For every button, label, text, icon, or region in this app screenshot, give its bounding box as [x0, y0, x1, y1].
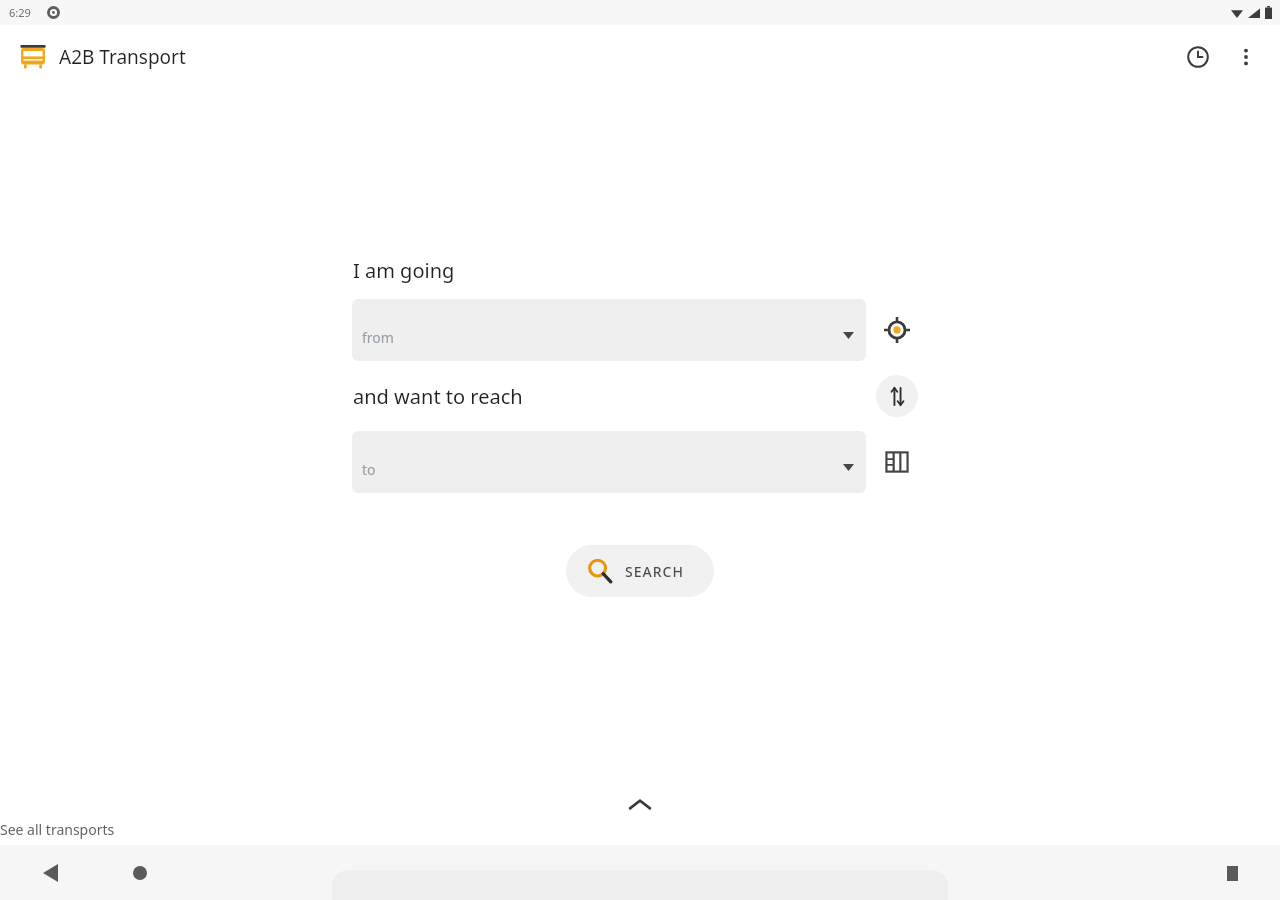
staticText: 6:29	[9, 5, 31, 20]
staticText: See all transports	[0, 820, 1280, 839]
button[interactable]: Choose on map	[866, 431, 928, 493]
staticText: SEARCH	[625, 562, 684, 581]
button[interactable]: Use my location	[866, 299, 928, 361]
staticText: and want to reach	[353, 383, 523, 410]
button[interactable]: Swap from and to	[876, 375, 918, 417]
button[interactable]: See all transports	[0, 799, 1280, 845]
button[interactable]: from	[352, 299, 866, 361]
button[interactable]: History	[1174, 33, 1222, 81]
staticText: to	[362, 460, 376, 479]
staticText: from	[362, 328, 394, 347]
staticText: A2B Transport	[59, 44, 186, 70]
button[interactable]: Home	[120, 853, 160, 893]
button[interactable]: Back	[30, 853, 70, 893]
staticText: I am going	[353, 257, 455, 284]
button[interactable]: SEARCH	[566, 545, 714, 597]
button[interactable]: Recents	[1212, 853, 1252, 893]
button[interactable]: to	[352, 431, 866, 493]
button[interactable]: More options	[1222, 33, 1270, 81]
